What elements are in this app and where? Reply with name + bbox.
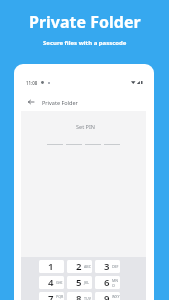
staticText: 8 xyxy=(76,292,82,300)
staticText: DEF xyxy=(112,264,119,269)
staticText: 5 xyxy=(76,276,82,289)
staticText: MNO xyxy=(112,278,120,288)
staticText: 7 xyxy=(48,292,54,300)
button[interactable]: 7 xyxy=(39,292,64,300)
staticText: 9 xyxy=(104,292,110,300)
button[interactable]: 8 xyxy=(67,292,92,300)
staticText: PQRS xyxy=(56,294,64,300)
staticText: 3 xyxy=(104,260,110,273)
button[interactable]: 9 xyxy=(95,292,120,300)
staticText: 4 xyxy=(48,276,54,289)
button[interactable]: 1 xyxy=(39,260,64,273)
staticText: 6 xyxy=(104,276,110,289)
button[interactable]: Back xyxy=(24,95,38,109)
staticText: Secure files with a passcode xyxy=(43,39,127,47)
button[interactable]: 4 xyxy=(39,276,64,289)
staticText: TUV xyxy=(84,296,91,300)
staticText: Private Folder xyxy=(29,11,141,33)
staticText: WXYZ xyxy=(112,294,120,300)
staticText: 11:08 xyxy=(26,80,38,86)
button[interactable]: 5 xyxy=(67,276,92,289)
staticText: 2 xyxy=(76,260,82,273)
staticText: 1 xyxy=(48,260,54,273)
staticText: Private Folder xyxy=(42,99,78,106)
staticText: JKL xyxy=(84,280,90,285)
button[interactable]: 3 xyxy=(95,260,120,273)
staticText: Set PIN xyxy=(23,123,148,130)
staticText: GHI xyxy=(56,280,63,285)
button[interactable]: 2 xyxy=(67,260,92,273)
staticText: ABC xyxy=(84,264,91,269)
button[interactable]: 6 xyxy=(95,276,120,289)
